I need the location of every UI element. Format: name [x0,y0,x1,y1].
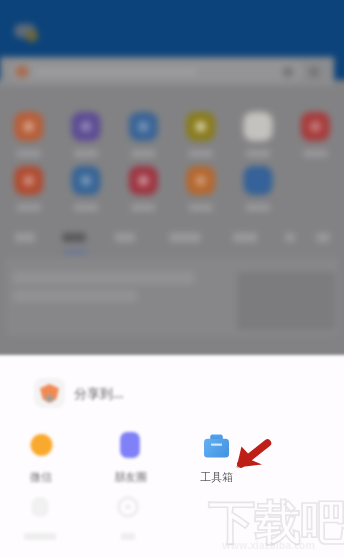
staticText: 工具箱 [200,470,233,484]
button[interactable]: 分享到… [34,378,124,408]
staticText: 微信 [30,470,52,484]
button[interactable]: More option [85,497,171,540]
staticText: 下载吧 [208,495,344,553]
button[interactable]: More option [0,497,83,540]
staticText: www.xiazaiba.com [222,538,316,552]
button[interactable]: 工具箱 [173,434,259,484]
staticText: 朋友圈 [114,470,147,484]
button[interactable]: 朋友圈 [87,432,173,484]
button[interactable]: 微信 [0,432,84,484]
other: Pointer [0,0,344,557]
staticText: 分享到… [74,384,124,402]
